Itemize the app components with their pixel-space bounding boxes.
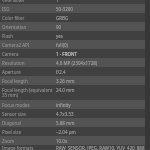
button[interactable]: Pixel size (0, 127, 150, 136)
staticText: 3.26 mm (56, 78, 75, 84)
staticText: RAW_SENSOR, JPEG, RAW10, YUV_420_888 (56, 145, 145, 150)
button[interactable]: Focus modes (0, 100, 150, 109)
button[interactable]: Flash (0, 31, 150, 40)
button[interactable]: Stop levels (0, 0, 150, 4)
button[interactable]: Aperture (0, 67, 150, 76)
staticText: infinity (56, 102, 71, 108)
button[interactable]: Diagonal (0, 118, 150, 127)
staticText: Image formats (2, 145, 55, 150)
staticText: 4.0 MP (2304x1728) (56, 60, 98, 66)
button[interactable]: Sensor size (0, 109, 150, 118)
staticText: Resolution (2, 60, 55, 66)
staticText: Diagonal (2, 120, 55, 126)
staticText: Focus modes (2, 102, 55, 108)
button[interactable]: ISO (0, 4, 150, 13)
staticText: f/2.4 (56, 69, 66, 75)
staticText: 90 (56, 24, 62, 30)
staticText: 5.88 mm (56, 120, 75, 126)
button[interactable]: Zoom (0, 136, 150, 145)
staticText: yes (56, 33, 63, 39)
button[interactable]: Camera (0, 49, 150, 58)
staticText: Focal length (equivalent 35 mm) (2, 87, 55, 99)
staticText: Aperture (2, 69, 55, 75)
staticText: GRBG (56, 15, 69, 21)
staticText: Sensor size (2, 111, 55, 117)
button[interactable]: Focal length (0, 76, 150, 85)
button[interactable]: Color filter (0, 13, 150, 22)
button[interactable]: Camera2 API (0, 40, 150, 49)
staticText: Stop levels (2, 0, 25, 2)
button[interactable]: Orientation (0, 22, 150, 31)
staticText: Flash (2, 33, 55, 39)
staticText: ~2.04 µm (56, 129, 76, 135)
button[interactable]: Resolution (0, 58, 150, 67)
staticText: Pixel size (2, 129, 55, 135)
staticText: full(0) (56, 42, 68, 48)
staticText: 24.0 mm (56, 87, 75, 93)
staticText: Focal length (2, 78, 55, 84)
staticText: 10.0x (56, 138, 68, 144)
staticText: 50-3200 (56, 6, 73, 12)
button[interactable]: Image formats (0, 145, 150, 150)
staticText: Orientation (2, 24, 55, 30)
staticText: Camera (2, 51, 55, 57)
staticText: Zoom (2, 138, 55, 144)
staticText: 1 - FRONT (56, 51, 77, 57)
staticText: Color filter (2, 15, 55, 21)
staticText: 1 (56, 0, 59, 2)
staticText: 4.7x3.53 (56, 111, 74, 117)
staticText: Camera2 API (2, 42, 55, 48)
button[interactable]: Focal length (equivalent 35 mm) (0, 85, 150, 100)
staticText: ISO (2, 6, 55, 12)
